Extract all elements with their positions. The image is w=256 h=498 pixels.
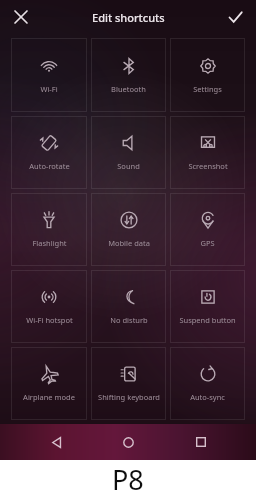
- button[interactable]: Recents: [184, 425, 218, 459]
- staticText: Suspend button: [179, 315, 236, 325]
- staticText: Wi-Fi: [40, 84, 58, 94]
- button[interactable]: Done: [220, 2, 250, 32]
- staticText: Sound: [117, 161, 140, 171]
- staticText: Settings: [193, 84, 222, 94]
- button[interactable]: Auto-sync: [168, 345, 247, 422]
- staticText: Airplane mode: [23, 392, 75, 402]
- staticText: Auto-sync: [190, 392, 225, 402]
- button[interactable]: Auto-rotate: [9, 114, 89, 191]
- staticText: Flashlight: [32, 238, 67, 248]
- button[interactable]: Airplane mode: [9, 345, 89, 422]
- button[interactable]: Settings: [168, 36, 247, 114]
- button[interactable]: Mobile data: [89, 191, 168, 268]
- staticText: Wi-Fi hotspot: [26, 315, 73, 325]
- staticText: Auto-rotate: [29, 161, 70, 171]
- button[interactable]: Flashlight: [9, 191, 89, 268]
- button[interactable]: GPS: [168, 191, 247, 268]
- button[interactable]: Wi-Fi: [9, 36, 89, 114]
- staticText: Edit shortcuts: [92, 10, 165, 25]
- staticText: Screenshot: [188, 161, 228, 171]
- staticText: No disturb: [110, 315, 148, 325]
- button[interactable]: Screenshot: [168, 114, 247, 191]
- button[interactable]: Suspend button: [168, 268, 247, 345]
- button[interactable]: Home: [111, 425, 145, 459]
- button[interactable]: Back: [39, 425, 73, 459]
- staticText: Mobile data: [108, 238, 150, 248]
- button[interactable]: Sound: [89, 114, 168, 191]
- staticText: P8: [112, 461, 144, 498]
- staticText: Shifting keyboard: [98, 392, 160, 402]
- button[interactable]: Bluetooth: [89, 36, 168, 114]
- button[interactable]: Wi-Fi hotspot: [9, 268, 89, 345]
- button[interactable]: No disturb: [89, 268, 168, 345]
- button[interactable]: Close: [6, 2, 36, 32]
- staticText: Bluetooth: [111, 84, 146, 94]
- button[interactable]: Shifting keyboard: [89, 345, 168, 422]
- staticText: GPS: [200, 238, 215, 248]
